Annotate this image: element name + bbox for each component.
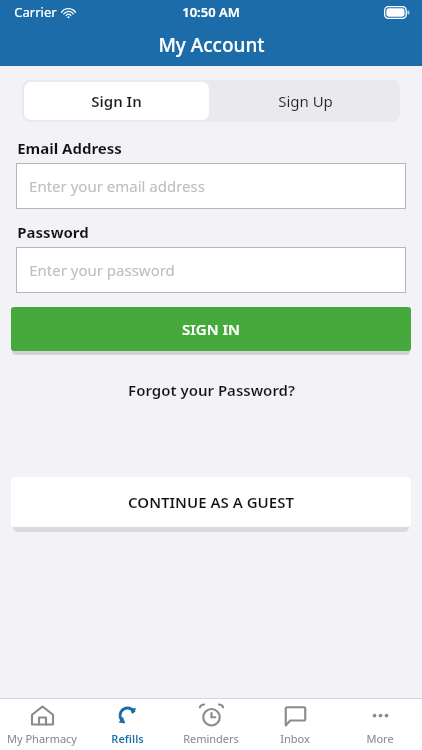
- staticText: CONTINUE AS A GUEST: [128, 492, 294, 512]
- button[interactable]: Sign Up: [211, 80, 400, 122]
- button[interactable]: Inbox: [253, 699, 337, 750]
- staticText: Password: [17, 222, 89, 242]
- staticText: Reminders: [183, 731, 239, 746]
- staticText: Sign Up: [278, 91, 333, 111]
- button[interactable]: Sign In: [24, 82, 209, 120]
- staticText: 10:50 AM: [182, 3, 240, 21]
- staticText: Forgot your Password?: [128, 380, 295, 400]
- button[interactable]: Enter your email address: [16, 163, 406, 209]
- button[interactable]: More: [338, 699, 422, 750]
- button[interactable]: Forgot your Password?: [118, 377, 305, 403]
- staticText: Enter your email address: [29, 176, 205, 196]
- staticText: More: [366, 731, 394, 746]
- button[interactable]: SIGN IN: [11, 307, 411, 351]
- button[interactable]: My Pharmacy: [0, 699, 84, 750]
- staticText: Sign In: [91, 91, 142, 111]
- button[interactable]: CONTINUE AS A GUEST: [11, 477, 411, 527]
- staticText: Enter your password: [29, 260, 175, 280]
- staticText: Inbox: [280, 731, 310, 746]
- button[interactable]: Enter your password: [16, 247, 406, 293]
- button[interactable]: Refills: [85, 699, 169, 750]
- staticText: Email Address: [17, 138, 122, 158]
- button[interactable]: Reminders: [169, 699, 253, 750]
- staticText: Carrier: [14, 3, 57, 21]
- staticText: My Pharmacy: [7, 731, 77, 746]
- staticText: SIGN IN: [182, 319, 240, 339]
- staticText: My Account: [158, 32, 265, 58]
- staticText: Refills: [111, 731, 144, 746]
